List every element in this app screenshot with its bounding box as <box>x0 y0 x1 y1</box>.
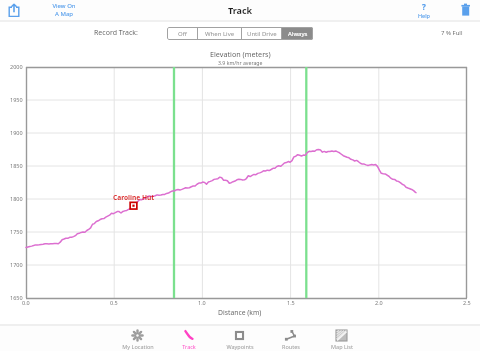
staticText: View On <box>52 2 76 10</box>
staticText: Help <box>418 12 430 19</box>
button[interactable]: When Live <box>198 27 241 40</box>
staticText: Routes <box>282 343 300 350</box>
staticText: Map List <box>331 343 353 350</box>
staticText: 0.5 <box>110 299 118 306</box>
button[interactable]: Always <box>282 27 313 40</box>
staticText: 1750 <box>10 228 23 235</box>
button[interactable]: Until Drive <box>242 27 281 40</box>
staticText: 1.5 <box>287 299 295 306</box>
staticText: 1950 <box>10 96 23 103</box>
staticText: 1650 <box>10 294 23 301</box>
button[interactable]: My Location <box>112 326 163 351</box>
staticText: When Live <box>205 30 235 38</box>
button[interactable]: Delete <box>460 3 473 16</box>
staticText: 1900 <box>10 129 23 136</box>
staticText: Record Track: <box>94 28 138 38</box>
button[interactable]: View On <box>48 2 80 18</box>
staticText: Track <box>182 343 196 350</box>
staticText: Elevation (meters) <box>210 49 271 59</box>
button[interactable]: Share <box>7 3 21 17</box>
button[interactable]: Map List <box>316 326 367 351</box>
staticText: 1850 <box>10 162 23 169</box>
staticText: My Location <box>122 343 154 350</box>
staticText: Track <box>228 4 253 16</box>
staticText: 2.5 <box>463 299 471 306</box>
staticText: ? <box>422 1 426 12</box>
staticText: Always <box>288 30 308 38</box>
button[interactable]: ? <box>410 1 437 19</box>
staticText: 2.0 <box>375 299 383 306</box>
staticText: 1800 <box>10 195 23 202</box>
button[interactable]: Waypoints <box>214 326 265 351</box>
staticText: Until Drive <box>247 30 277 38</box>
staticText: A Map <box>55 10 73 18</box>
staticText: Waypoints <box>226 343 254 350</box>
button[interactable]: Track <box>163 326 214 351</box>
staticText: 0.0 <box>22 299 30 306</box>
staticText: Distance (km) <box>218 308 262 317</box>
staticText: Off <box>178 30 187 38</box>
button[interactable]: Off <box>167 27 197 40</box>
button[interactable]: Routes <box>265 326 316 351</box>
staticText: 1.0 <box>198 299 206 306</box>
staticText: Caroline Hut <box>113 193 155 202</box>
staticText: 1700 <box>10 261 23 268</box>
staticText: 2000 <box>10 63 23 70</box>
staticText: 3.9 km/hr average <box>218 59 263 66</box>
staticText: 7 % Full <box>441 29 463 37</box>
